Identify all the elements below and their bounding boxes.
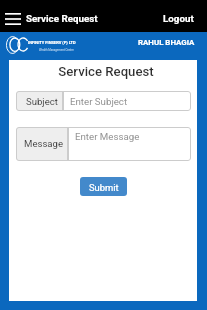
button[interactable]: Enter Subject — [63, 91, 191, 111]
button[interactable]: Logout — [150, 2, 207, 31]
staticText: INFINITY FINSERV (P) LTD — [28, 40, 76, 45]
staticText: Enter Subject — [70, 96, 128, 107]
staticText: Wealth Management Centre — [39, 48, 74, 51]
button[interactable]: Submit — [80, 177, 127, 196]
staticText: RAHUL BHAGIA — [138, 38, 195, 47]
button[interactable]: Open navigation menu — [0, 0, 25, 32]
staticText: Submit — [89, 182, 119, 193]
button[interactable]: Enter Message — [68, 127, 191, 161]
staticText: Service Request — [26, 13, 98, 24]
staticText: Subject — [26, 96, 58, 107]
staticText: Service Request — [12, 64, 200, 79]
staticText: Logout — [163, 13, 194, 24]
staticText: Message — [24, 138, 64, 149]
staticText: Enter Message — [75, 131, 140, 142]
